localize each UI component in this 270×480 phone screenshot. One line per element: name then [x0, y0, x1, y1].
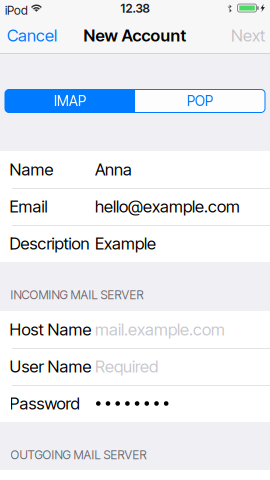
staticText: 12.38 [120, 1, 149, 16]
staticText: OUTGOING MAIL SERVER [10, 448, 146, 462]
button[interactable]: IMAP [5, 89, 135, 112]
staticText: User Name [9, 356, 91, 377]
staticText: Next [231, 25, 265, 46]
staticText: Required [95, 356, 158, 377]
button[interactable]: Password [0, 385, 270, 422]
staticText: Name [9, 159, 53, 180]
staticText: INCOMING MAIL SERVER [10, 288, 143, 302]
staticText: Example [95, 233, 156, 254]
staticText: IMAP [54, 92, 86, 109]
button[interactable]: Next [225, 17, 270, 54]
button[interactable]: Name [0, 151, 270, 188]
staticText: iPod [5, 3, 28, 17]
staticText: Anna [95, 159, 132, 180]
staticText: New Account [83, 25, 186, 46]
staticText: Host Name [9, 319, 91, 340]
staticText: Description [9, 233, 89, 254]
staticText: Cancel [7, 25, 57, 46]
button[interactable]: Email [0, 188, 270, 225]
button[interactable]: Cancel [0, 17, 65, 54]
button[interactable]: Description [0, 225, 270, 262]
staticText: mail.example.com [95, 319, 225, 340]
staticText: hello@example.com [95, 196, 240, 217]
staticText: POP [187, 92, 213, 109]
staticText: Email [9, 196, 47, 217]
staticText: Password [9, 393, 79, 414]
button[interactable]: User Name [0, 348, 270, 385]
button[interactable]: Host Name [0, 311, 270, 348]
button[interactable]: POP [135, 89, 265, 112]
